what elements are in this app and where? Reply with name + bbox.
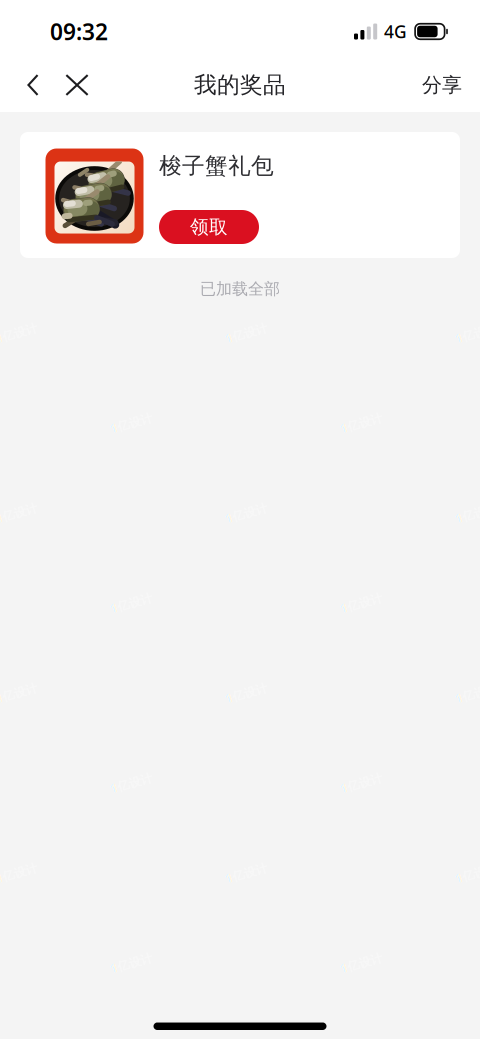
staticText: 09:32 — [50, 16, 108, 46]
staticText: 梭子蟹礼包 — [159, 152, 274, 180]
staticText: 领取 — [190, 215, 228, 238]
staticText: 1亿设计 — [455, 865, 480, 881]
staticText: 1亿设计 — [455, 325, 480, 341]
button[interactable]: 返回 — [13, 62, 53, 108]
staticText: 4G — [384, 20, 407, 43]
staticText: 分享 — [422, 73, 462, 97]
staticText: 已加载全部 — [200, 279, 280, 299]
button[interactable]: 领取 — [159, 210, 259, 244]
staticText: 1亿设计 — [455, 685, 480, 701]
button[interactable]: 分享 — [413, 62, 471, 108]
button[interactable]: 关闭 — [53, 62, 101, 108]
staticText: 1亿设计 — [455, 505, 480, 521]
staticText: 我的奖品 — [194, 71, 286, 99]
